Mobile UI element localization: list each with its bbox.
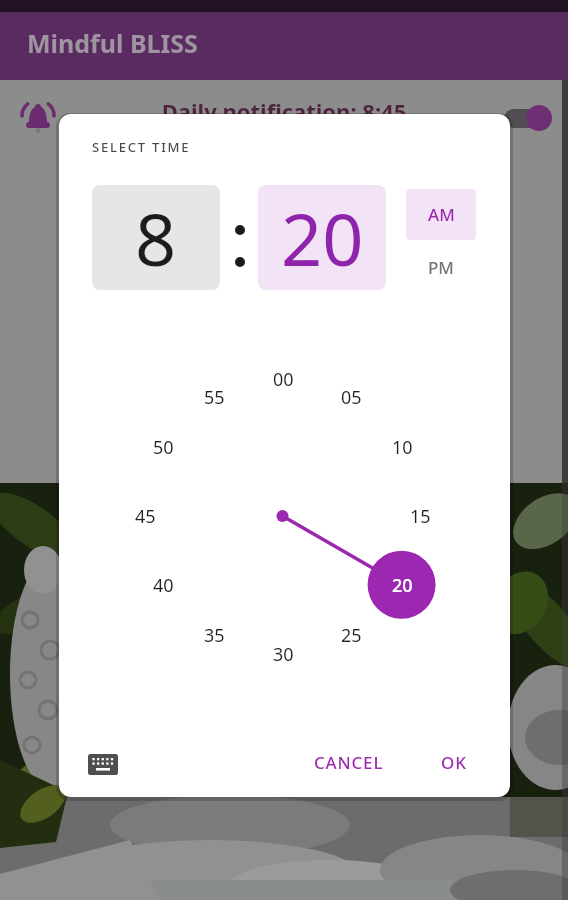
staticText: 45 [135,504,156,529]
button[interactable]: 20 [258,185,386,290]
button[interactable]: PM [406,242,476,292]
button[interactable]: 50 [141,433,185,461]
button[interactable]: OK [427,744,481,780]
button[interactable]: 00 [261,365,305,393]
button[interactable]: AM [406,189,476,240]
button[interactable]: 25 [329,621,373,649]
button[interactable] [88,754,118,775]
staticText: 15 [410,504,431,529]
staticText: Daily notification: 8:45 [154,96,414,126]
button[interactable]: 40 [141,571,185,599]
staticText: 50 [153,435,174,460]
staticText: 55 [204,385,225,410]
button[interactable]: 55 [192,383,236,411]
button[interactable]: 05 [329,383,373,411]
staticText: OK [441,751,467,774]
staticText: 20 [392,573,413,598]
button[interactable]: 15 [398,502,442,530]
staticText: 10 [392,435,413,460]
button[interactable]: 45 [123,502,167,530]
button[interactable]: 20 [380,571,424,599]
staticText: 05 [341,385,362,410]
staticText: CANCEL [314,751,384,774]
staticText: PM [428,256,454,279]
button[interactable]: 35 [192,621,236,649]
staticText: 30 [273,642,294,667]
button[interactable]: 8 [92,185,220,290]
staticText: 40 [153,573,174,598]
staticText: Mindful BLISS [27,26,198,60]
staticText: 25 [341,623,362,648]
button[interactable]: CANCEL [289,744,409,780]
staticText: SELECT TIME [92,138,191,156]
staticText: AM [428,203,455,226]
staticText: 8 [135,189,177,287]
button[interactable]: 10 [380,433,424,461]
staticText: 20 [281,189,364,287]
staticText: 00 [273,367,294,392]
button[interactable]: 30 [261,640,305,668]
button[interactable]: Mindful BLISS [0,12,568,80]
staticText: 35 [204,623,225,648]
